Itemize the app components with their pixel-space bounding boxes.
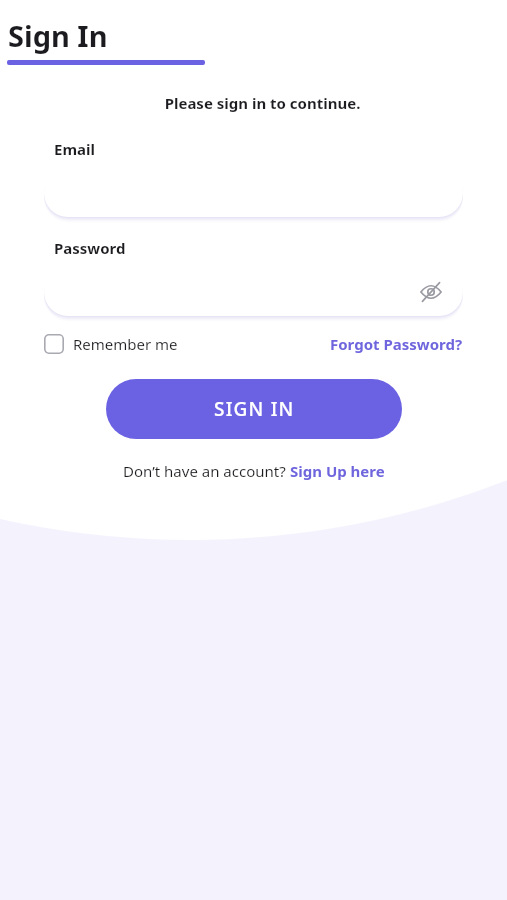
staticText: Don’t have an account? xyxy=(123,461,290,481)
button[interactable]: Show password xyxy=(417,278,445,306)
button[interactable]: Remember me xyxy=(44,334,178,354)
staticText: Please sign in to continue. xyxy=(18,93,507,113)
staticText: SIGN IN xyxy=(214,396,295,422)
button[interactable]: Show password xyxy=(44,268,463,316)
button[interactable]: Sign Up here xyxy=(290,461,385,481)
staticText: Remember me xyxy=(73,334,178,354)
staticText: Password xyxy=(54,238,126,258)
staticText: Email xyxy=(54,139,95,159)
staticText: Sign In xyxy=(8,16,108,55)
button[interactable]: SIGN IN xyxy=(106,379,402,439)
button[interactable]: Forgot Password? xyxy=(330,334,463,354)
